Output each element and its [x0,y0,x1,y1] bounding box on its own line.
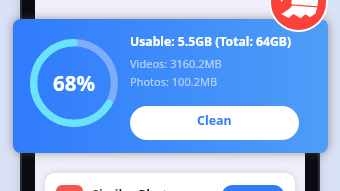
staticText: Videos: 3160.2MB [130,56,222,71]
button[interactable]: Clean [130,106,299,140]
staticText: Similar Photos [92,186,182,191]
staticText: Clean [197,112,232,129]
staticText: Photos: 100.2MB [130,74,218,89]
button[interactable]: Similar Photos [45,173,295,191]
staticText: Usable: 5.5GB (Total: 64GB) [130,33,292,50]
staticText: 68% [53,69,95,97]
button[interactable]: Clean now [269,0,328,32]
